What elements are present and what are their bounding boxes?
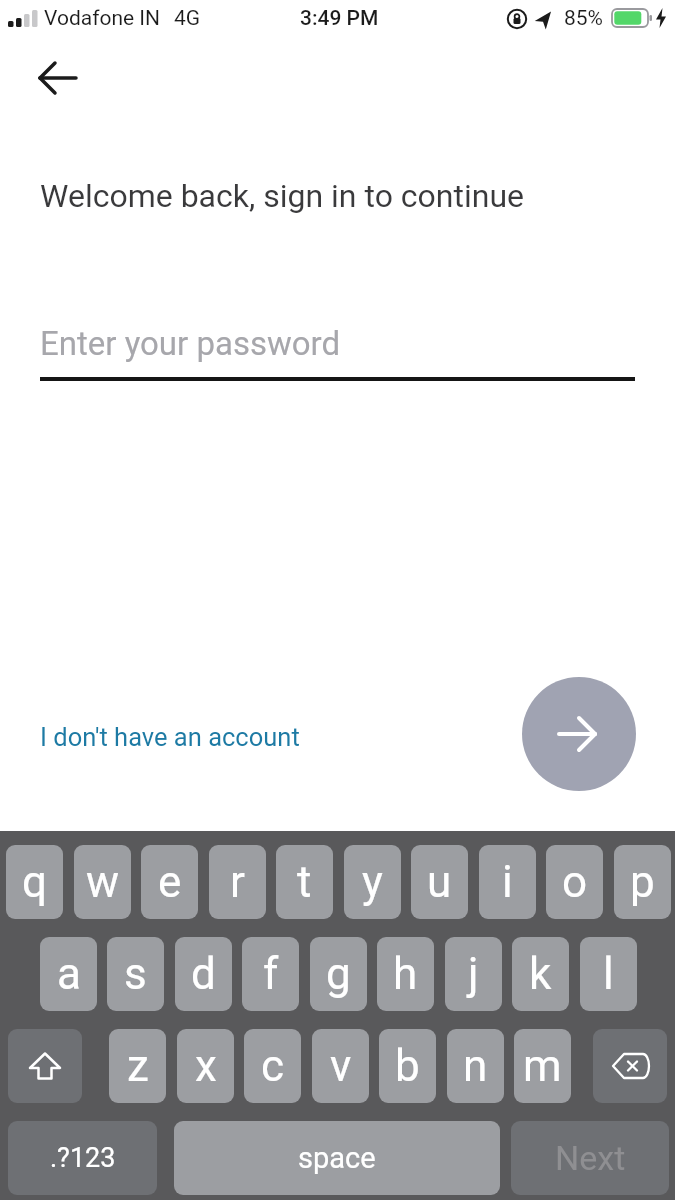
- staticText: y: [362, 856, 383, 908]
- staticText: x: [195, 1040, 217, 1092]
- button[interactable]: k: [512, 937, 569, 1011]
- staticText: space: [298, 1141, 376, 1175]
- staticText: z: [127, 1040, 149, 1092]
- button[interactable]: e: [141, 845, 198, 919]
- button[interactable]: y: [344, 845, 401, 919]
- button[interactable]: s: [107, 937, 164, 1011]
- button[interactable]: .?123: [8, 1121, 157, 1195]
- button[interactable]: z: [109, 1029, 166, 1103]
- button[interactable]: a: [40, 937, 97, 1011]
- button[interactable]: v: [312, 1029, 369, 1103]
- button[interactable]: d: [175, 937, 232, 1011]
- button[interactable]: h: [377, 937, 434, 1011]
- button[interactable]: w: [74, 845, 131, 919]
- staticText: Welcome back, sign in to continue: [40, 177, 525, 215]
- staticText: s: [124, 948, 147, 1000]
- button[interactable]: [28, 52, 88, 104]
- button[interactable]: [522, 677, 636, 791]
- staticText: k: [529, 948, 552, 1000]
- staticText: Next: [555, 1138, 626, 1178]
- button[interactable]: l: [580, 937, 637, 1011]
- staticText: n: [463, 1040, 488, 1092]
- staticText: r: [230, 856, 245, 908]
- button[interactable]: r: [209, 845, 266, 919]
- staticText: 3:49 PM: [300, 6, 379, 31]
- button[interactable]: Next: [511, 1121, 669, 1195]
- staticText: w: [86, 856, 120, 908]
- staticText: .?123: [50, 1142, 116, 1174]
- staticText: b: [395, 1040, 420, 1092]
- button[interactable]: o: [546, 845, 603, 919]
- button[interactable]: q: [6, 845, 63, 919]
- staticText: g: [326, 948, 351, 1000]
- button[interactable]: f: [242, 937, 299, 1011]
- staticText: I don't have an account: [40, 722, 300, 752]
- button[interactable]: i: [479, 845, 536, 919]
- button[interactable]: g: [310, 937, 367, 1011]
- button[interactable]: space: [174, 1121, 500, 1195]
- staticText: Vodafone IN: [44, 6, 161, 31]
- button[interactable]: j: [445, 937, 502, 1011]
- staticText: l: [603, 948, 614, 1000]
- staticText: f: [263, 948, 279, 1000]
- button[interactable]: m: [514, 1029, 571, 1103]
- staticText: 4G: [174, 6, 201, 31]
- button[interactable]: x: [177, 1029, 234, 1103]
- button[interactable]: c: [244, 1029, 301, 1103]
- staticText: t: [297, 856, 312, 908]
- staticText: m: [523, 1040, 562, 1092]
- staticText: j: [468, 948, 479, 1000]
- button[interactable]: p: [614, 845, 671, 919]
- staticText: a: [57, 948, 81, 1000]
- button[interactable]: u: [411, 845, 468, 919]
- button[interactable]: n: [447, 1029, 504, 1103]
- staticText: e: [158, 856, 182, 908]
- staticText: u: [427, 856, 452, 908]
- button[interactable]: t: [276, 845, 333, 919]
- staticText: Enter your password: [40, 324, 341, 363]
- staticText: d: [191, 948, 216, 1000]
- button[interactable]: Enter your password: [40, 324, 635, 376]
- staticText: o: [562, 856, 588, 908]
- staticText: v: [330, 1040, 352, 1092]
- staticText: i: [502, 856, 513, 908]
- button[interactable]: [8, 1029, 82, 1103]
- button[interactable]: b: [379, 1029, 436, 1103]
- staticText: c: [261, 1040, 285, 1092]
- button[interactable]: I don't have an account: [38, 718, 302, 756]
- staticText: h: [393, 948, 418, 1000]
- staticText: q: [22, 856, 48, 908]
- button[interactable]: [593, 1029, 667, 1103]
- staticText: p: [630, 856, 655, 908]
- staticText: 85%: [564, 6, 603, 31]
